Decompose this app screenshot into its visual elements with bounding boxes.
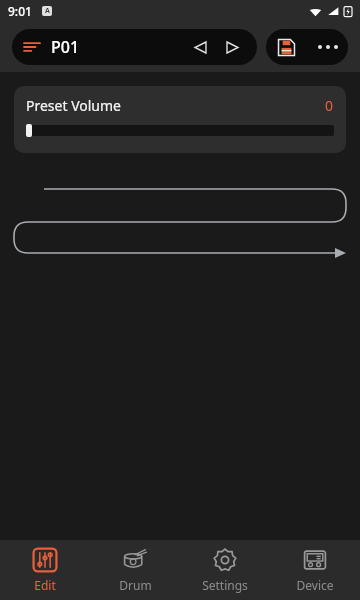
button[interactable]: Save preset (266, 29, 307, 65)
staticText: A (45, 6, 50, 16)
button[interactable]: Next preset (219, 34, 245, 60)
staticText: Settings (202, 577, 248, 593)
staticText: Edit (34, 577, 56, 593)
button[interactable]: Edit (0, 540, 90, 600)
button[interactable]: Drum (90, 540, 180, 600)
staticText: Drum (119, 577, 152, 593)
staticText: Device (296, 577, 334, 593)
staticText: Preset Volume (26, 96, 122, 115)
staticText: 9:01 (8, 3, 32, 19)
button[interactable]: More options (307, 29, 348, 65)
staticText: 0 (325, 96, 334, 115)
button[interactable]: Previous preset (187, 34, 213, 60)
button[interactable]: Settings (180, 540, 270, 600)
button[interactable]: Preset Volume (14, 86, 346, 153)
staticText: P01 (51, 36, 80, 58)
button[interactable]: Device (270, 540, 360, 600)
button[interactable]: P01 (12, 29, 257, 65)
